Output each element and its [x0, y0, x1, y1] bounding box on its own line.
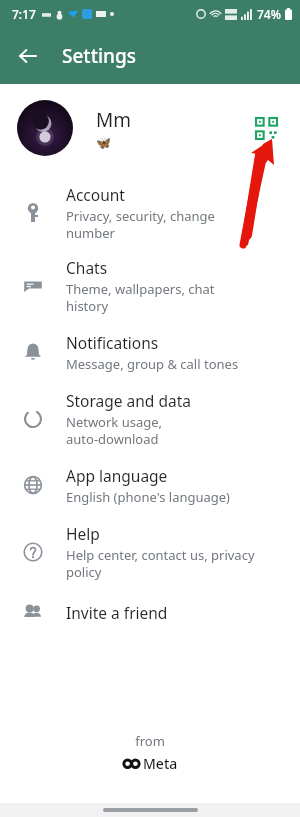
staticText: from	[135, 732, 165, 750]
staticText: Meta	[143, 754, 178, 773]
staticText: Account	[66, 184, 125, 205]
staticText: Message, group & call tones	[66, 355, 239, 373]
staticText: Notifications	[66, 332, 159, 353]
button[interactable]: Invite a friend	[0, 588, 300, 636]
staticText: Chats	[66, 257, 108, 278]
staticText: 🦋	[96, 136, 111, 150]
staticText: Invite a friend	[66, 602, 168, 623]
staticText: Storage and data	[66, 390, 191, 411]
staticText: 74%	[257, 6, 281, 22]
button[interactable]: Chats	[0, 249, 300, 322]
button[interactable]: Back	[6, 34, 50, 78]
button[interactable]: Help	[0, 515, 300, 588]
button[interactable]: Storage and data	[0, 382, 300, 455]
staticText: Help center, contact us, privacy policy	[66, 546, 255, 581]
button[interactable]: Account	[0, 176, 300, 249]
staticText: Privacy, security, change number	[66, 207, 215, 242]
button[interactable]: Mm	[0, 84, 300, 172]
staticText: English (phone's language)	[66, 488, 231, 506]
button[interactable]: App language	[0, 455, 300, 515]
staticText: 7:17	[12, 6, 36, 22]
button[interactable]: QR code	[249, 111, 283, 145]
staticText: Mm	[96, 107, 131, 133]
staticText: Help	[66, 523, 100, 544]
staticText: App language	[66, 465, 168, 486]
staticText: Theme, wallpapers, chat history	[66, 280, 215, 315]
button[interactable]: Notifications	[0, 322, 300, 382]
staticText: Network usage, auto-download	[66, 413, 163, 448]
staticText: Settings	[62, 43, 136, 69]
